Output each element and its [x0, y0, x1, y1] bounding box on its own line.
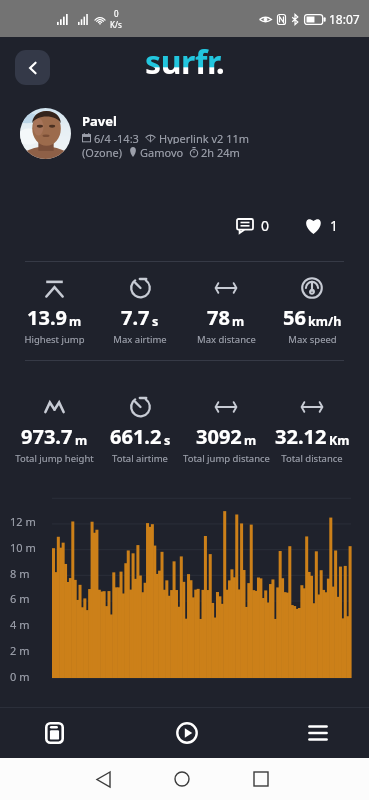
staticText: 661.2 [110, 423, 162, 450]
staticText: 973.7 [21, 423, 73, 450]
staticText: Highest jump [24, 333, 85, 346]
staticText: 1 [330, 216, 339, 235]
staticText: 4 m [10, 617, 30, 632]
staticText: m [69, 313, 82, 330]
staticText: Max distance [197, 333, 256, 346]
staticText: 8 m [10, 566, 30, 581]
button[interactable]: Record [159, 711, 215, 755]
staticText: m [75, 432, 88, 449]
staticText: 18:07 [329, 11, 360, 27]
staticText: (Ozone) [82, 145, 123, 159]
staticText: surfr. [145, 40, 225, 84]
staticText: 12 m [10, 514, 36, 529]
staticText: 6 m [10, 591, 30, 606]
staticText: Km [329, 432, 350, 449]
button[interactable]: Sessions [26, 711, 82, 755]
button[interactable]: Back [15, 50, 50, 85]
staticText: s [152, 313, 159, 330]
staticText: 78 [207, 304, 230, 331]
other: Home [174, 771, 190, 787]
staticText: 56 [283, 304, 306, 331]
staticText: 2h 24m [201, 145, 240, 159]
staticText: 0 [114, 8, 119, 19]
other: Recents [254, 772, 268, 786]
staticText: 13.9 [27, 304, 67, 331]
staticText: 0 m [10, 669, 30, 684]
button[interactable]: 1 [300, 212, 343, 239]
staticText: 3092 [196, 423, 242, 450]
button[interactable]: Menu [290, 711, 346, 755]
staticText: 10 m [10, 540, 36, 555]
staticText: m [232, 313, 245, 330]
staticText: 2 m [10, 643, 30, 658]
other: Back [97, 772, 110, 787]
staticText: s [164, 432, 171, 449]
staticText: km/h [308, 313, 342, 330]
staticText: Max airtime [113, 333, 167, 346]
staticText: 6/4 -14:3 [94, 131, 139, 144]
staticText: 7.7 [121, 304, 150, 331]
staticText: Total jump distance [183, 452, 270, 465]
staticText: Pavel [82, 112, 117, 130]
staticText: m [244, 432, 257, 449]
staticText: 0 [261, 216, 270, 235]
staticText: K/s [110, 19, 122, 30]
staticText: Hyperlink v2 11m [159, 131, 250, 144]
staticText: 32.12 [275, 423, 327, 450]
staticText: Total distance [281, 452, 343, 465]
staticText: Total jump height [15, 452, 94, 465]
staticText: Max speed [288, 333, 337, 346]
staticText: Gamovo [140, 145, 184, 159]
button[interactable]: 0 [232, 212, 274, 239]
staticText: Total airtime [112, 452, 168, 465]
